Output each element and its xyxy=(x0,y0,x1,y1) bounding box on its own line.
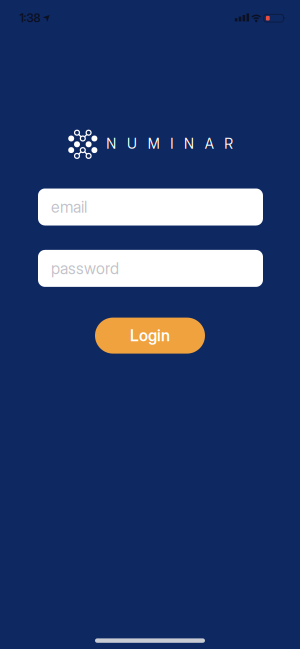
staticText: email xyxy=(51,197,87,217)
staticText: NUMINAR xyxy=(106,135,233,152)
button[interactable]: password xyxy=(38,250,263,287)
staticText: 1:38 xyxy=(19,11,40,25)
staticText: Login xyxy=(130,326,170,345)
button[interactable]: email xyxy=(38,188,263,225)
button[interactable]: Login xyxy=(95,318,205,354)
staticText: password xyxy=(51,259,119,278)
